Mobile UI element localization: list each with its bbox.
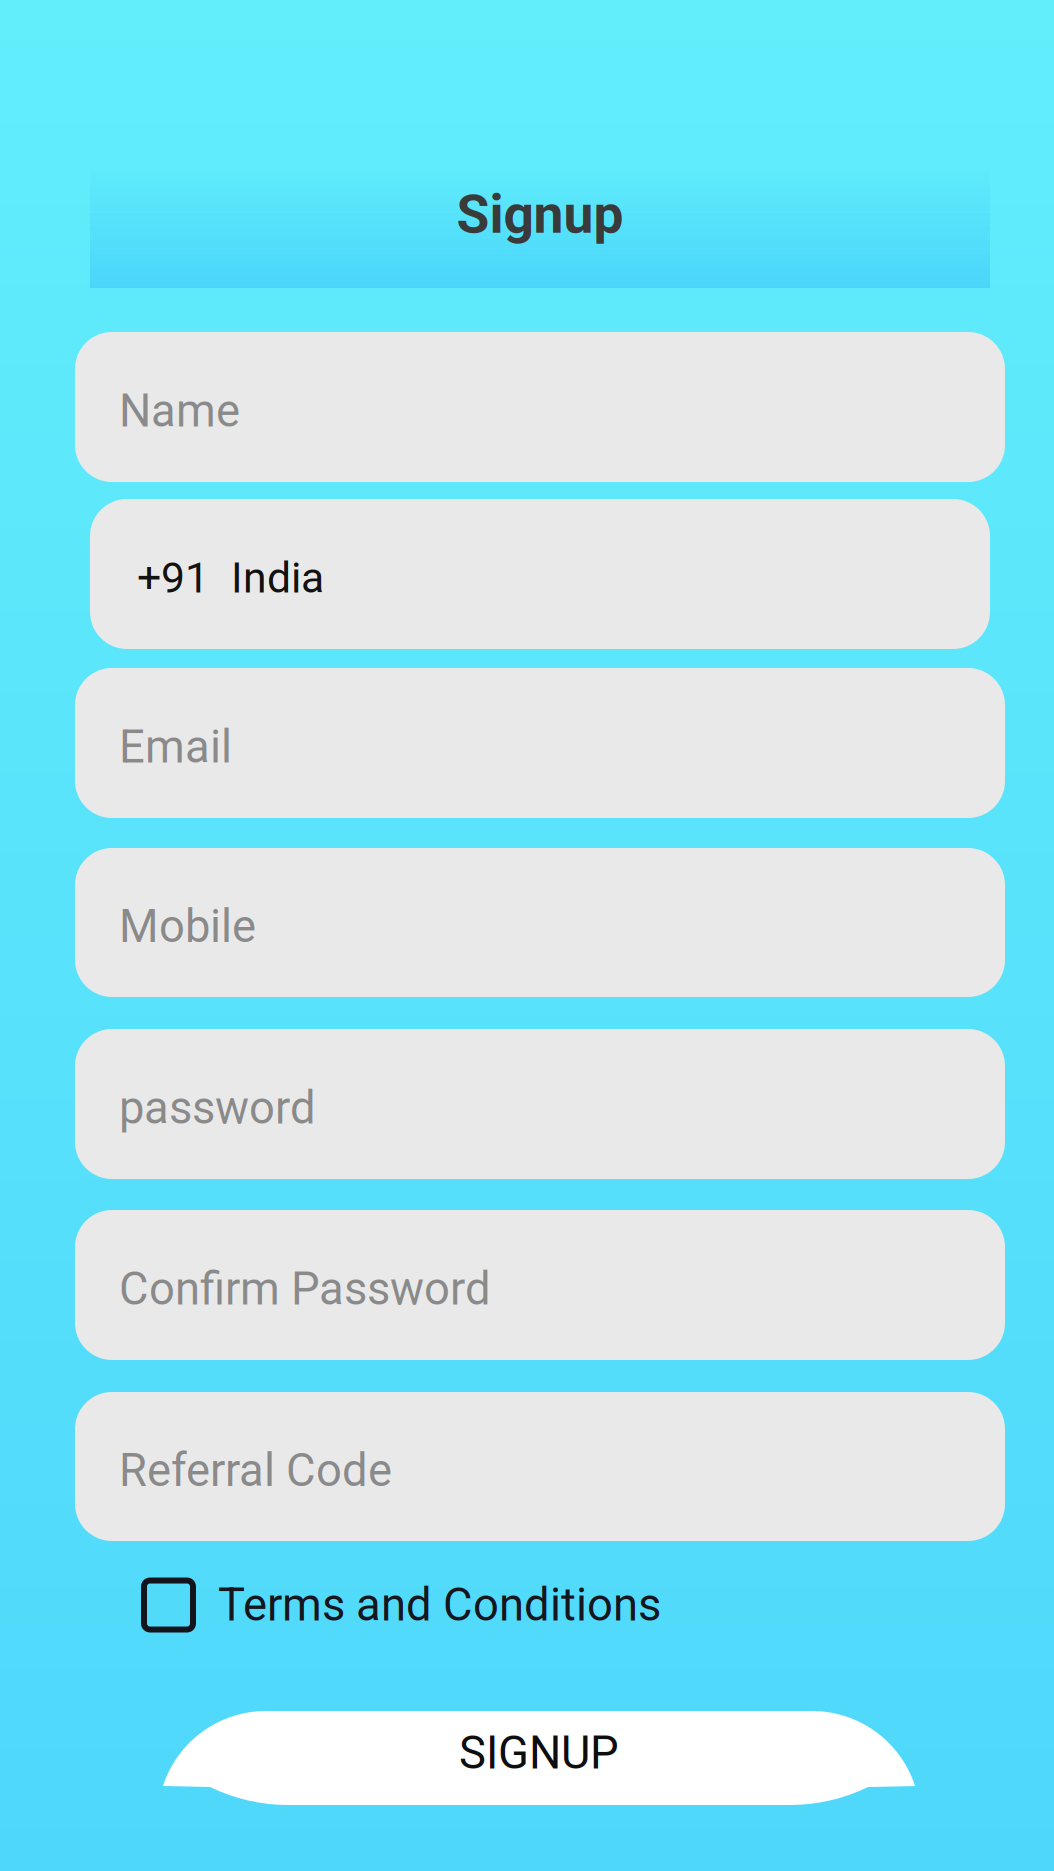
button[interactable]: SIGNUP	[163, 1711, 915, 1805]
staticText: Terms and Conditions	[218, 1578, 661, 1631]
button[interactable]: Terms and Conditions	[141, 1573, 661, 1637]
button[interactable]: Referral Code	[75, 1392, 1005, 1541]
staticText: SIGNUP	[459, 1726, 619, 1779]
staticText: Email	[119, 720, 232, 773]
staticText: Confirm Password	[119, 1262, 491, 1315]
button[interactable]: Confirm Password	[75, 1210, 1005, 1360]
staticText: Name	[119, 384, 240, 437]
button[interactable]: Name	[75, 332, 1005, 482]
button[interactable]: Email	[75, 668, 1005, 818]
staticText: Mobile	[119, 900, 256, 953]
staticText: +91 India	[137, 553, 324, 603]
button[interactable]: password	[75, 1029, 1005, 1179]
button[interactable]: +91 India	[90, 499, 990, 649]
button[interactable]: Mobile	[75, 848, 1005, 997]
staticText: Signup	[456, 183, 623, 246]
staticText: Referral Code	[119, 1444, 392, 1497]
staticText: password	[119, 1081, 316, 1134]
